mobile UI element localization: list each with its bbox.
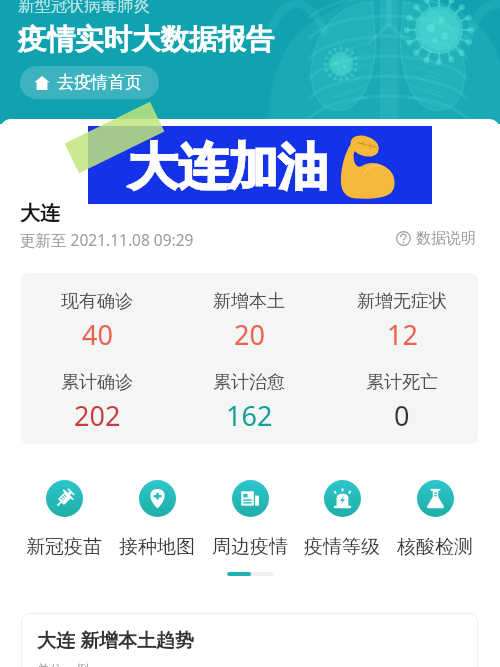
staticText: 接种地图 [119, 535, 195, 559]
staticText: 大连 [20, 201, 60, 226]
staticText: 累计治愈 [213, 371, 285, 394]
button[interactable]: 接种地图 [116, 480, 198, 559]
staticText: 更新至 2021.11.08 09:29 [20, 229, 194, 250]
staticText: 162 [226, 397, 273, 434]
staticText: 20 [234, 316, 265, 353]
button[interactable]: 核酸检测 [394, 480, 476, 559]
staticText: 累计确诊 [61, 371, 133, 394]
staticText: 累计死亡 [366, 371, 438, 394]
staticText: 0 [394, 397, 410, 434]
button[interactable]: 累计治愈 [173, 371, 325, 434]
button[interactable]: 累计确诊 [21, 371, 173, 434]
button[interactable]: 大连 新增本土趋势 [21, 613, 478, 667]
staticText: 12 [387, 316, 418, 353]
staticText: 去疫情首页 [57, 72, 142, 93]
staticText: 核酸检测 [397, 535, 473, 559]
staticText: 单位：例 [37, 661, 89, 667]
staticText: 大连 新增本土趋势 [37, 627, 194, 653]
staticText: 新型冠状病毒肺炎 [18, 0, 150, 16]
staticText: 现有确诊 [61, 290, 133, 313]
staticText: 202 [74, 397, 121, 434]
staticText: 新冠疫苗 [26, 535, 102, 559]
button[interactable]: 周边疫情 [209, 480, 291, 559]
staticText: 新增无症状 [357, 290, 447, 313]
button[interactable]: 现有确诊 [21, 290, 173, 353]
staticText: 疫情等级 [304, 535, 380, 559]
staticText: 大连加油 [128, 136, 328, 199]
button[interactable]: 去疫情首页 [20, 66, 159, 99]
button[interactable]: 疫情等级 [301, 480, 383, 559]
button[interactable]: 数据说明 [394, 227, 478, 250]
staticText: 周边疫情 [212, 535, 288, 559]
staticText: 数据说明 [416, 229, 476, 248]
staticText: 40 [82, 316, 113, 353]
button[interactable]: 新增本土 [173, 290, 325, 353]
button[interactable]: 新冠疫苗 [23, 480, 105, 559]
staticText: 新增本土 [213, 290, 285, 313]
staticText: 疫情实时大数据报告 [18, 22, 275, 58]
button[interactable]: 累计死亡 [326, 371, 478, 434]
button[interactable]: 新增无症状 [326, 290, 478, 353]
